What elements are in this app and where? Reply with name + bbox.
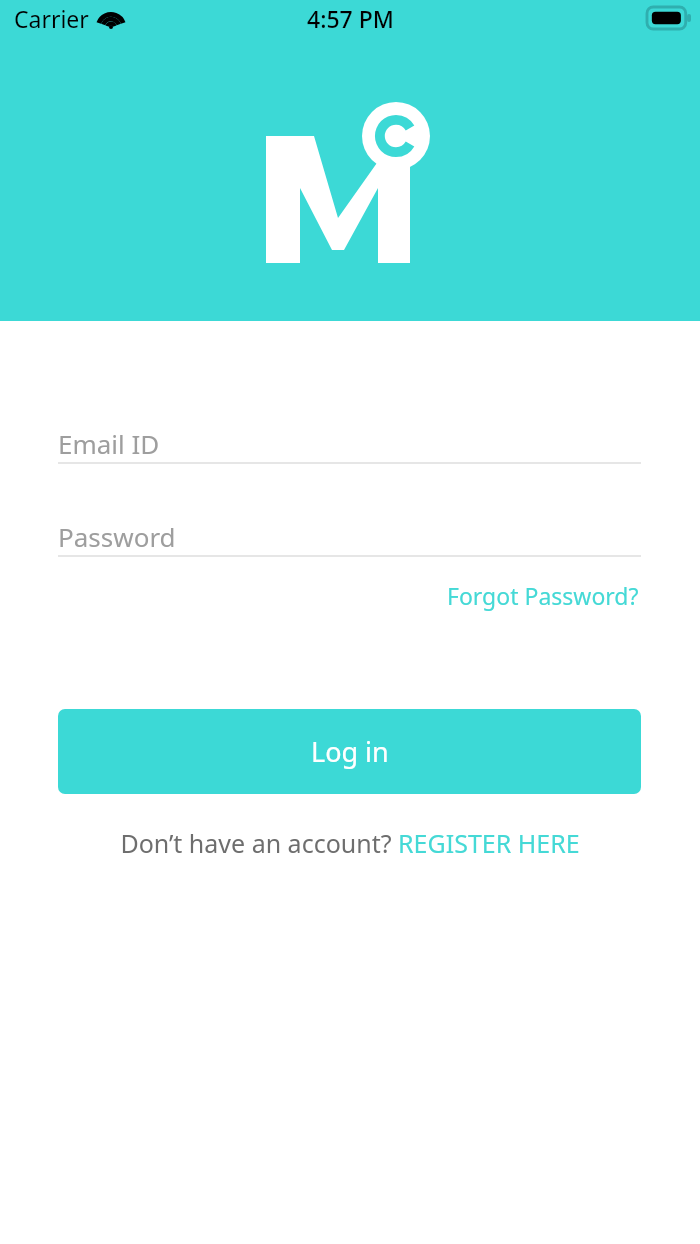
- other: Battery full: [647, 7, 691, 29]
- button[interactable]: Password: [58, 517, 641, 557]
- other: Wi-Fi signal: [98, 9, 124, 29]
- staticText: Log in: [311, 733, 389, 770]
- button[interactable]: Forgot Password?: [445, 576, 641, 615]
- staticText: 4:57 PM: [307, 3, 394, 34]
- staticText: Forgot Password?: [447, 580, 639, 611]
- button[interactable]: Email ID: [58, 424, 641, 464]
- staticText: Carrier: [14, 3, 89, 34]
- staticText: Email ID: [58, 426, 160, 461]
- staticText: Password: [58, 519, 176, 554]
- staticText: Don’t have an account? REGISTER HERE: [120, 826, 580, 860]
- other: App logo: [262, 100, 434, 268]
- button[interactable]: Don’t have an account? REGISTER HERE: [58, 822, 641, 864]
- button[interactable]: Log in: [58, 709, 641, 794]
